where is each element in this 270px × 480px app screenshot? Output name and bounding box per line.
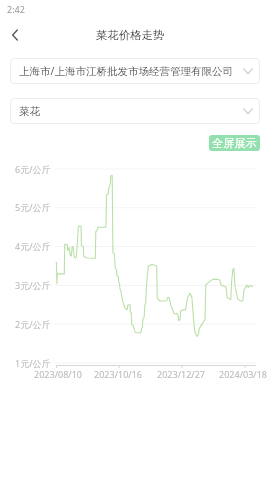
staticText: 1元/公斤 — [15, 357, 51, 369]
staticText: 6元/公斤 — [15, 163, 51, 175]
staticText: 2023/08/10 — [28, 368, 88, 380]
staticText: 2023/10/16 — [88, 368, 148, 380]
staticText: 全屏展示 — [212, 136, 257, 150]
staticText: 2:42 — [7, 3, 25, 15]
button[interactable]: Back — [2, 22, 28, 48]
staticText: 2元/公斤 — [15, 318, 51, 330]
staticText: 5元/公斤 — [15, 201, 51, 213]
staticText: 2024/03/18 — [213, 368, 270, 380]
staticText: 3元/公斤 — [15, 279, 51, 291]
staticText: 4元/公斤 — [15, 240, 51, 252]
staticText: 菜花 — [19, 105, 242, 118]
staticText: 菜花价格走势 — [96, 28, 165, 42]
button[interactable]: 菜花 — [10, 98, 260, 124]
button[interactable]: 上海市/上海市江桥批发市场经营管理有限公司 — [10, 58, 260, 84]
staticText: 2023/12/27 — [151, 368, 211, 380]
staticText: 上海市/上海市江桥批发市场经营管理有限公司 — [19, 64, 242, 78]
button[interactable]: 全屏展示 — [209, 135, 260, 151]
